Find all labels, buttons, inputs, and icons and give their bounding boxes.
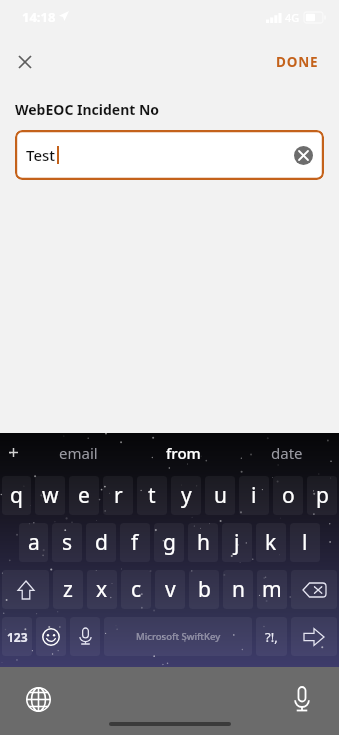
button[interactable]: u (205, 476, 235, 515)
button[interactable]: Change keyboard (18, 679, 58, 719)
staticText: 4G (285, 10, 300, 25)
button[interactable]: Microsoft SwiftKey (104, 617, 252, 656)
button[interactable]: a (19, 523, 48, 562)
button[interactable]: Test (15, 130, 324, 180)
button[interactable]: g (154, 523, 184, 562)
staticText: e (78, 481, 90, 510)
staticText: ?!, (265, 628, 278, 646)
button[interactable]: from (131, 433, 235, 472)
button[interactable]: Shift (2, 570, 49, 609)
button[interactable]: b (189, 570, 219, 609)
staticText: u (214, 481, 227, 510)
button[interactable]: Clear text (294, 146, 313, 165)
button[interactable]: j (222, 523, 252, 562)
button[interactable]: x (87, 570, 117, 609)
button[interactable]: p (307, 476, 337, 515)
staticText: y (181, 481, 192, 510)
staticText: 14:18 (22, 8, 56, 26)
staticText: z (63, 575, 73, 604)
staticText: DONE (276, 53, 319, 71)
button[interactable]: Enter (291, 617, 337, 656)
button[interactable]: r (103, 476, 133, 515)
button[interactable]: n (223, 570, 253, 609)
staticText: b (198, 575, 211, 604)
button[interactable]: m (257, 570, 287, 609)
button[interactable]: More suggestions (0, 433, 26, 472)
button[interactable]: f (120, 523, 150, 562)
button[interactable]: DONE (266, 44, 329, 80)
button[interactable]: Close (5, 42, 45, 82)
staticText: n (232, 575, 245, 604)
staticText: f (131, 528, 139, 557)
staticText: c (131, 575, 142, 604)
button[interactable]: 123 (2, 617, 32, 656)
button[interactable]: Voice typing (70, 617, 100, 656)
staticText: email (59, 443, 98, 463)
staticText: o (282, 481, 295, 510)
staticText: Test (26, 145, 56, 165)
staticText: m (262, 575, 282, 604)
button[interactable]: q (2, 476, 31, 515)
staticText: v (165, 575, 176, 604)
staticText: g (163, 528, 176, 557)
staticText: w (42, 481, 59, 510)
staticText: date (271, 443, 303, 463)
staticText: k (265, 528, 277, 557)
button[interactable]: i (239, 476, 269, 515)
button[interactable]: v (155, 570, 185, 609)
staticText: i (251, 481, 257, 510)
button[interactable]: t (137, 476, 167, 515)
button[interactable]: ?!, (256, 617, 287, 656)
button[interactable]: date (235, 433, 339, 472)
button[interactable]: e (69, 476, 99, 515)
staticText: j (234, 528, 240, 557)
button[interactable]: l (290, 523, 320, 562)
staticText: l (302, 528, 308, 557)
button[interactable]: y (171, 476, 201, 515)
staticText: t (148, 481, 156, 510)
button[interactable]: h (188, 523, 218, 562)
button[interactable]: k (256, 523, 286, 562)
button[interactable]: z (53, 570, 83, 609)
staticText: s (62, 528, 73, 557)
staticText: from (166, 443, 201, 463)
button[interactable]: Emoji (36, 617, 66, 656)
button[interactable]: w (35, 476, 65, 515)
button[interactable]: s (52, 523, 82, 562)
staticText: p (316, 481, 329, 510)
button[interactable]: email (26, 433, 131, 472)
staticText: Microsoft SwiftKey (136, 630, 221, 643)
button[interactable]: Voice input (282, 679, 322, 719)
staticText: d (95, 528, 108, 557)
button[interactable]: c (121, 570, 151, 609)
staticText: x (96, 575, 108, 604)
button[interactable]: Backspace (291, 570, 337, 609)
staticText: r (114, 481, 123, 510)
staticText: q (10, 481, 23, 510)
button[interactable]: d (86, 523, 116, 562)
staticText: 123 (7, 629, 28, 645)
button[interactable]: o (273, 476, 303, 515)
staticText: h (197, 528, 210, 557)
staticText: WebEOC Incident No (15, 100, 160, 119)
staticText: a (28, 528, 40, 557)
